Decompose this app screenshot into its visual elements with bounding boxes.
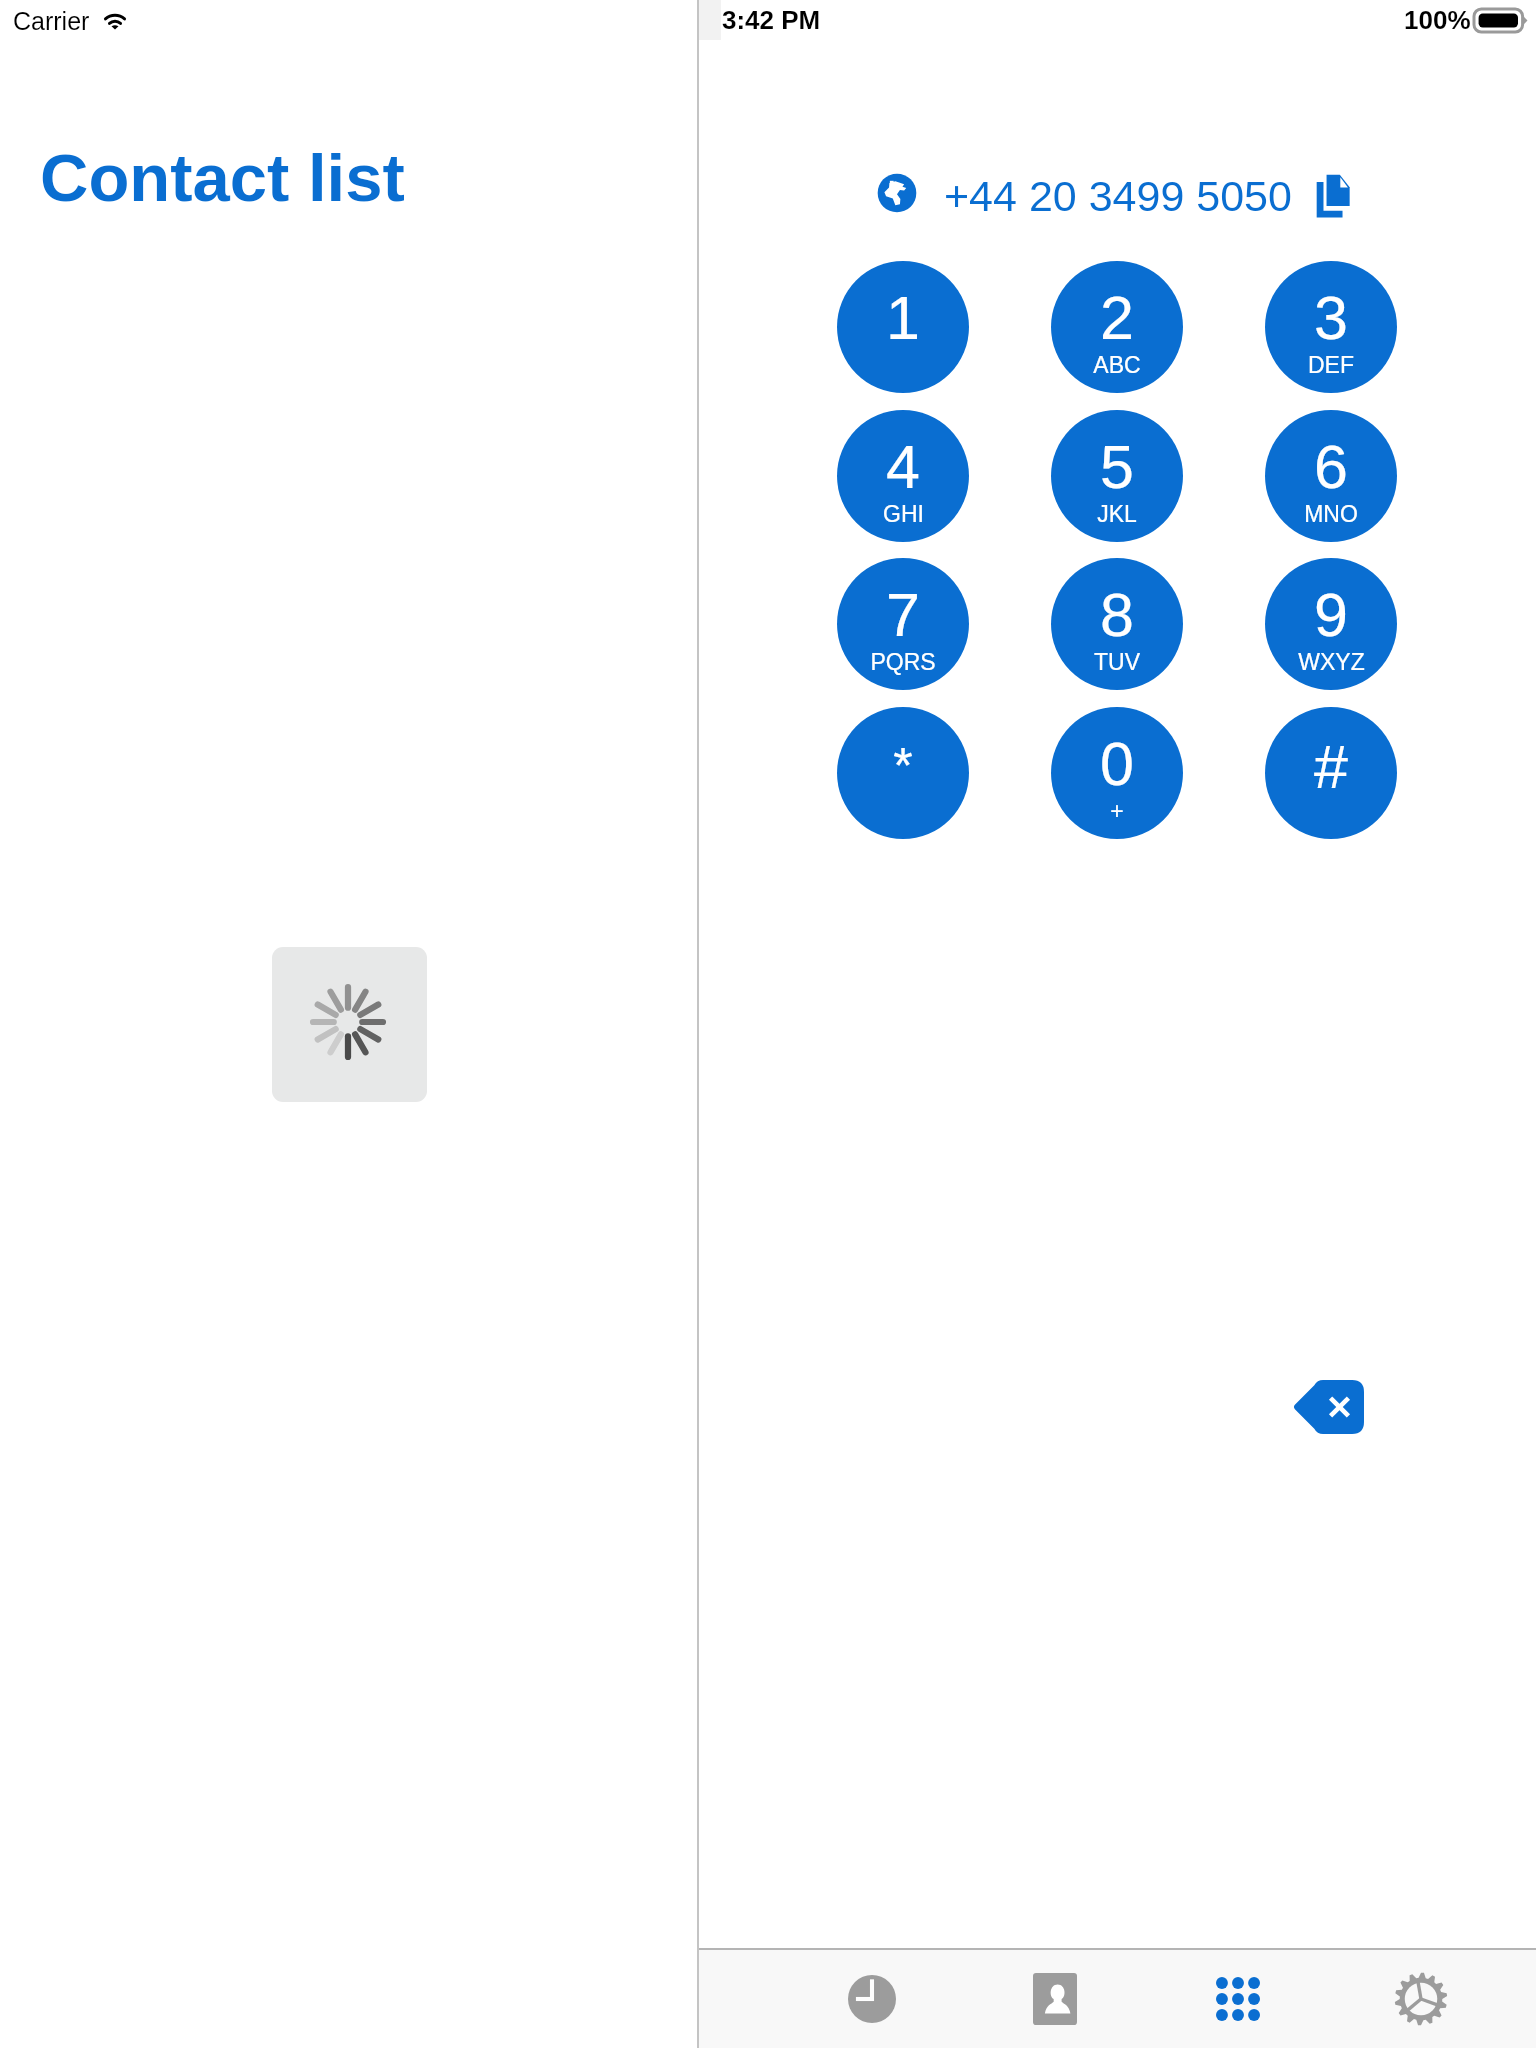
staticText: 7 <box>886 581 920 649</box>
staticText: 4 <box>886 433 920 501</box>
staticText: MNO <box>1304 501 1358 527</box>
button[interactable]: 4 <box>837 410 969 542</box>
staticText: 100% <box>1404 5 1471 34</box>
staticText: DEF <box>1308 352 1354 378</box>
staticText: 1 <box>886 284 920 352</box>
button[interactable]: 2 <box>1051 261 1183 393</box>
staticText: JKL <box>1097 501 1137 527</box>
button[interactable]: Copy <box>1316 172 1350 218</box>
button[interactable]: Recents <box>781 1950 963 2048</box>
button[interactable]: Contacts <box>963 1950 1146 2048</box>
button[interactable]: 7 <box>837 558 969 690</box>
button[interactable]: # <box>1265 707 1397 839</box>
staticText: * <box>893 738 913 794</box>
staticText: PQRS <box>870 649 936 675</box>
button[interactable]: 5 <box>1051 410 1183 542</box>
staticText: +44 20 3499 5050 <box>944 172 1292 220</box>
button[interactable]: 8 <box>1051 558 1183 690</box>
button[interactable]: 0 <box>1051 707 1183 839</box>
staticText: WXYZ <box>1298 649 1365 675</box>
staticText: Contact list <box>40 140 405 215</box>
button[interactable]: 6 <box>1265 410 1397 542</box>
staticText: + <box>1110 798 1124 824</box>
staticText: ABC <box>1093 352 1141 378</box>
staticText: Carrier <box>13 7 90 35</box>
staticText: 0 <box>1100 730 1134 798</box>
button[interactable]: Settings <box>1329 1950 1512 2048</box>
button[interactable]: 3 <box>1265 261 1397 393</box>
staticText: 6 <box>1314 433 1348 501</box>
staticText: GHI <box>883 501 924 527</box>
button[interactable]: 9 <box>1265 558 1397 690</box>
staticText: 8 <box>1100 581 1134 649</box>
button[interactable]: * <box>837 707 969 839</box>
staticText: 5 <box>1100 433 1134 501</box>
button[interactable]: Backspace <box>1293 1380 1364 1434</box>
button[interactable]: Keypad <box>1146 1950 1329 2048</box>
button[interactable]: 1 <box>837 261 969 393</box>
staticText: 3:42 PM <box>722 5 821 34</box>
staticText: # <box>1314 733 1348 801</box>
button[interactable]: International <box>876 172 918 214</box>
staticText: 9 <box>1314 581 1348 649</box>
staticText: 2 <box>1100 284 1134 352</box>
staticText: TUV <box>1094 649 1140 675</box>
staticText: 3 <box>1314 284 1348 352</box>
